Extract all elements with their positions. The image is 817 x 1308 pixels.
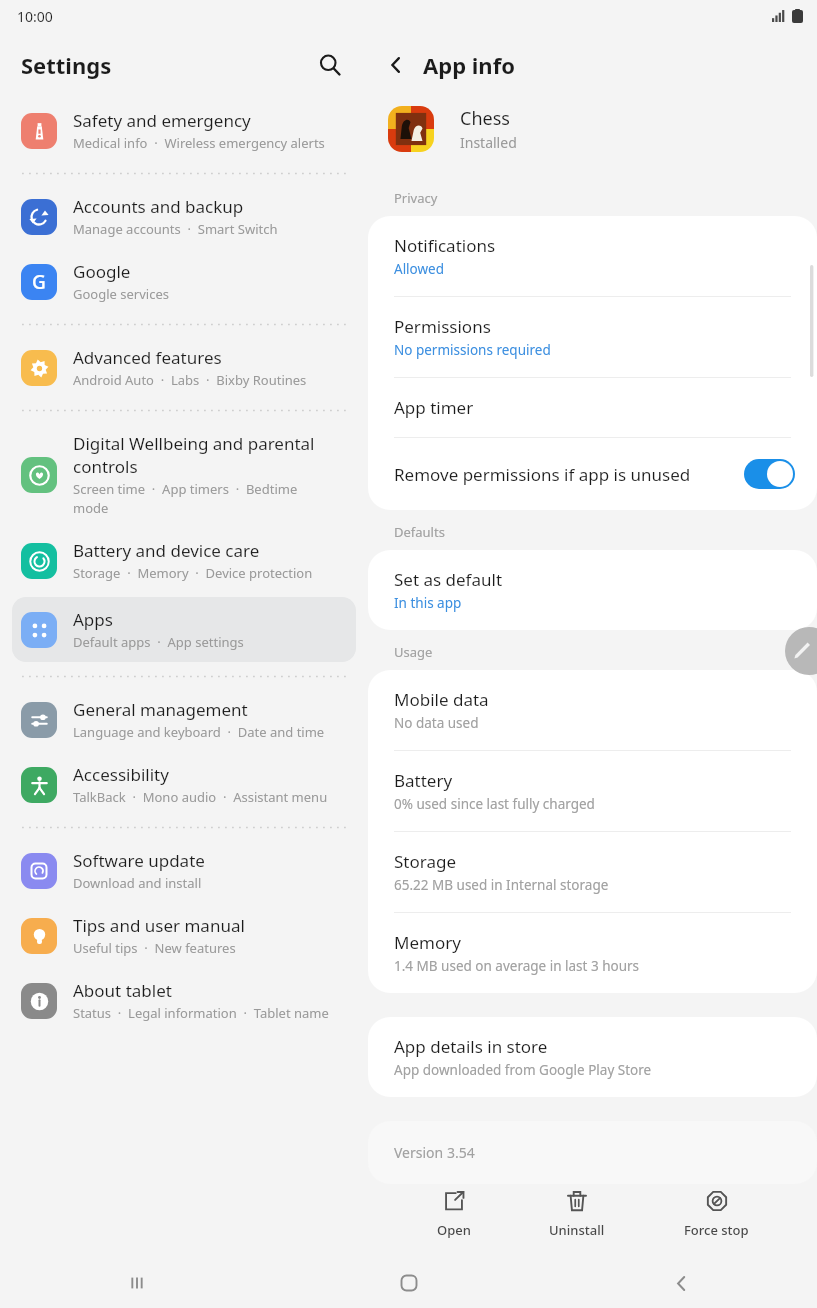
staticText: In this app [394, 594, 462, 612]
staticText: Mobile data [394, 688, 489, 711]
staticText: Useful tips · New features [73, 939, 236, 957]
button[interactable]: Permissions [368, 297, 817, 377]
staticText: Uninstall [549, 1221, 605, 1239]
staticText: G [32, 269, 46, 295]
staticText: Android Auto · Labs · Bixby Routines [73, 371, 307, 389]
button[interactable]: Chess [368, 98, 817, 176]
staticText: Allowed [394, 260, 445, 278]
button[interactable]: Advanced features [0, 335, 368, 400]
staticText: Set as default [394, 568, 503, 591]
button[interactable]: Set as default [368, 550, 817, 630]
staticText: Tips and user manual [73, 914, 245, 937]
button[interactable]: Battery and device care [0, 528, 368, 593]
button[interactable]: Uninstall [529, 1184, 625, 1245]
staticText: Force stop [684, 1221, 749, 1239]
staticText: App info [423, 50, 515, 80]
button[interactable]: Accounts and backup [0, 184, 368, 249]
button[interactable]: Software update [0, 838, 368, 903]
button[interactable]: Edit [785, 627, 817, 675]
button[interactable]: Recents [0, 1258, 273, 1308]
button[interactable]: App timer [368, 378, 817, 437]
button[interactable]: Search [308, 43, 352, 87]
staticText: Chess [460, 106, 510, 131]
button[interactable]: Force stop [664, 1184, 769, 1245]
button[interactable]: Memory [368, 913, 817, 993]
staticText: No permissions required [394, 341, 551, 359]
staticText: Usage [394, 643, 433, 661]
staticText: Status · Legal information · Tablet name [73, 1004, 329, 1022]
staticText: Version 3.54 [394, 1143, 475, 1162]
button[interactable]: Battery [368, 751, 817, 831]
staticText: Memory [394, 931, 461, 954]
staticText: Battery [394, 769, 453, 792]
staticText: 0% used since last fully charged [394, 795, 595, 813]
staticText: Google services [73, 285, 169, 303]
staticText: App details in store [394, 1035, 548, 1058]
button[interactable]: Home [273, 1258, 545, 1308]
staticText: Google [73, 260, 131, 283]
staticText: Digital Wellbeing and parental controls [73, 432, 315, 478]
staticText: Privacy [394, 189, 438, 207]
staticText: 10:00 [17, 7, 53, 26]
staticText: Defaults [394, 523, 445, 541]
staticText: Apps [73, 608, 113, 631]
staticText: About tablet [73, 979, 172, 1002]
button[interactable]: Safety and emergency [0, 98, 368, 163]
staticText: Default apps · App settings [73, 633, 244, 651]
button[interactable]: Back [374, 43, 418, 87]
button[interactable]: Tips and user manual [0, 903, 368, 968]
staticText: Settings [21, 50, 112, 80]
staticText: Software update [73, 849, 205, 872]
staticText: Remove permissions if app is unused [394, 463, 744, 486]
staticText: App timer [394, 396, 474, 419]
staticText: Storage [394, 850, 457, 873]
staticText: Storage · Memory · Device protection [73, 564, 313, 582]
staticText: Manage accounts · Smart Switch [73, 220, 278, 238]
button[interactable]: Accessibility [0, 752, 368, 817]
staticText: Installed [460, 133, 517, 152]
staticText: Permissions [394, 315, 491, 338]
staticText: 1.4 MB used on average in last 3 hours [394, 957, 640, 975]
button[interactable]: Remove permissions if app is unused [368, 438, 817, 510]
staticText: TalkBack · Mono audio · Assistant menu [73, 788, 328, 806]
staticText: Advanced features [73, 346, 222, 369]
button[interactable]: Apps [12, 597, 356, 662]
button[interactable]: About tablet [0, 968, 368, 1033]
staticText: Open [437, 1221, 471, 1239]
staticText: 65.22 MB used in Internal storage [394, 876, 609, 894]
staticText: Language and keyboard · Date and time [73, 723, 325, 741]
button[interactable]: Notifications [368, 216, 817, 296]
staticText: Screen time · App timers · Bedtime mode [73, 480, 298, 517]
staticText: Accounts and backup [73, 195, 244, 218]
button[interactable]: Storage [368, 832, 817, 912]
staticText: Accessibility [73, 763, 169, 786]
staticText: Notifications [394, 234, 496, 257]
button[interactable]: Back [545, 1258, 817, 1308]
button[interactable]: General management [0, 687, 368, 752]
staticText: Medical info · Wireless emergency alerts [73, 134, 325, 152]
button[interactable]: Mobile data [368, 670, 817, 750]
staticText: Battery and device care [73, 539, 260, 562]
button[interactable]: App details in store [368, 1017, 817, 1097]
staticText: No data used [394, 714, 479, 732]
staticText: Download and install [73, 874, 202, 892]
button[interactable]: G [0, 249, 368, 314]
staticText: General management [73, 698, 248, 721]
staticText: Safety and emergency [73, 109, 251, 132]
staticText: App downloaded from Google Play Store [394, 1061, 652, 1079]
button[interactable]: Open [417, 1184, 491, 1245]
button[interactable]: Digital Wellbeing and parental controls [0, 421, 368, 528]
